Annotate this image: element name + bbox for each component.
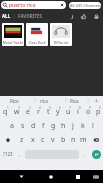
button[interactable]: 4 bbox=[33, 105, 43, 119]
staticText: u bbox=[66, 107, 71, 117]
staticText: s bbox=[21, 121, 25, 131]
button[interactable]: RVTav de best bbox=[50, 23, 72, 46]
staticText: 8 bbox=[79, 106, 81, 110]
staticText: n bbox=[71, 135, 76, 145]
button[interactable]: 2 bbox=[11, 105, 22, 119]
button[interactable]: Rico bbox=[0, 96, 29, 105]
staticText: Rica bbox=[70, 98, 79, 104]
staticText: y bbox=[56, 107, 60, 117]
staticText: f bbox=[42, 121, 45, 131]
button[interactable]: n bbox=[68, 133, 78, 147]
button[interactable]: k bbox=[78, 119, 88, 133]
staticText: d bbox=[31, 121, 36, 131]
button[interactable]: All 235 Channels bbox=[69, 2, 101, 9]
button[interactable]: FAVORITES bbox=[18, 13, 43, 19]
staticText: v bbox=[51, 135, 55, 145]
staticText: 3 bbox=[29, 106, 31, 110]
button[interactable]: f bbox=[38, 119, 48, 133]
button[interactable]: x bbox=[27, 133, 38, 147]
button[interactable]: h bbox=[58, 119, 68, 133]
button[interactable]: s bbox=[17, 119, 28, 133]
button[interactable]: d bbox=[28, 119, 38, 133]
staticText: Metal Tracks Blvd bbox=[2, 40, 24, 46]
staticText: q bbox=[3, 107, 8, 117]
button[interactable]: Backspace bbox=[88, 133, 103, 147]
staticText: 2 bbox=[18, 106, 20, 110]
staticText: ALL bbox=[2, 13, 11, 19]
staticText: rica bbox=[40, 98, 48, 104]
button[interactable]: 5 bbox=[43, 105, 53, 119]
button[interactable]: 6 bbox=[53, 105, 63, 119]
button[interactable]: , bbox=[15, 147, 24, 161]
button[interactable]: b bbox=[58, 133, 68, 147]
button[interactable]: Lock bbox=[92, 12, 100, 20]
staticText: h bbox=[61, 121, 66, 131]
button[interactable]: z bbox=[16, 133, 27, 147]
button[interactable]: c bbox=[38, 133, 48, 147]
staticText: o bbox=[86, 107, 91, 117]
button[interactable]: 3 bbox=[22, 105, 33, 119]
staticText: Class Rock Track bbox=[26, 40, 48, 46]
button[interactable]: v bbox=[48, 133, 58, 147]
button[interactable]: More suggestions bbox=[89, 96, 103, 105]
staticText: FAVORITES bbox=[18, 13, 43, 19]
staticText: , bbox=[19, 151, 21, 158]
button[interactable]: puerto rico bbox=[1, 1, 66, 9]
staticText: k bbox=[81, 121, 85, 131]
button[interactable]: ?123 bbox=[0, 147, 15, 161]
button[interactable]: . bbox=[80, 147, 89, 161]
staticText: j bbox=[72, 121, 74, 131]
button[interactable]: j bbox=[68, 119, 78, 133]
staticText: w bbox=[14, 107, 20, 117]
staticText: x bbox=[31, 135, 35, 145]
staticText: puerto rico bbox=[9, 2, 36, 9]
staticText: b bbox=[61, 135, 66, 145]
button[interactable]: Home bbox=[44, 170, 58, 183]
staticText: | bbox=[13, 13, 16, 19]
staticText: t bbox=[47, 107, 50, 117]
button[interactable]: 9 bbox=[83, 105, 93, 119]
button[interactable]: Rica bbox=[59, 96, 89, 105]
staticText: c bbox=[41, 135, 45, 145]
staticText: RVTav de best bbox=[50, 40, 72, 46]
button[interactable]: Metal Tracks Blvd bbox=[2, 23, 24, 46]
button[interactable]: l bbox=[88, 119, 98, 133]
staticText: 0 bbox=[99, 106, 101, 110]
staticText: g bbox=[51, 121, 56, 131]
button[interactable]: 0 bbox=[93, 105, 103, 119]
staticText: a bbox=[10, 121, 14, 131]
staticText: m bbox=[80, 135, 87, 145]
staticText: 4 bbox=[39, 106, 41, 110]
staticText: . bbox=[84, 151, 86, 158]
button[interactable]: Class Rock Track bbox=[26, 23, 48, 46]
button[interactable]: g bbox=[48, 119, 58, 133]
staticText: Rico bbox=[10, 98, 19, 104]
button[interactable]: ALL bbox=[2, 13, 11, 19]
staticText: 9 bbox=[89, 106, 91, 110]
staticText: p bbox=[96, 107, 101, 117]
staticText: ?123 bbox=[3, 151, 13, 157]
staticText: i bbox=[77, 107, 79, 117]
staticText: 6 bbox=[59, 106, 61, 110]
staticText: z bbox=[20, 135, 24, 145]
button[interactable]: Enter bbox=[92, 150, 101, 159]
staticText: 7 bbox=[69, 106, 71, 110]
staticText: r bbox=[37, 107, 40, 117]
staticText: e bbox=[26, 107, 30, 117]
button[interactable]: 7 bbox=[63, 105, 73, 119]
button[interactable]: 1 bbox=[0, 105, 11, 119]
button[interactable]: Switch keyboard bbox=[90, 170, 102, 183]
button[interactable]: Back bbox=[14, 170, 28, 183]
button[interactable]: m bbox=[78, 133, 88, 147]
button[interactable]: a bbox=[6, 119, 17, 133]
button[interactable]: Night mode bbox=[66, 12, 74, 20]
button[interactable]: Like bbox=[79, 12, 87, 20]
staticText: All 235 Channels bbox=[70, 3, 101, 8]
button[interactable]: 8 bbox=[73, 105, 83, 119]
staticText: 1 bbox=[7, 106, 9, 110]
staticText: l bbox=[92, 121, 94, 131]
button[interactable]: Shift bbox=[0, 133, 16, 147]
button[interactable]: Recent apps bbox=[71, 170, 85, 183]
button[interactable]: rica bbox=[29, 96, 59, 105]
